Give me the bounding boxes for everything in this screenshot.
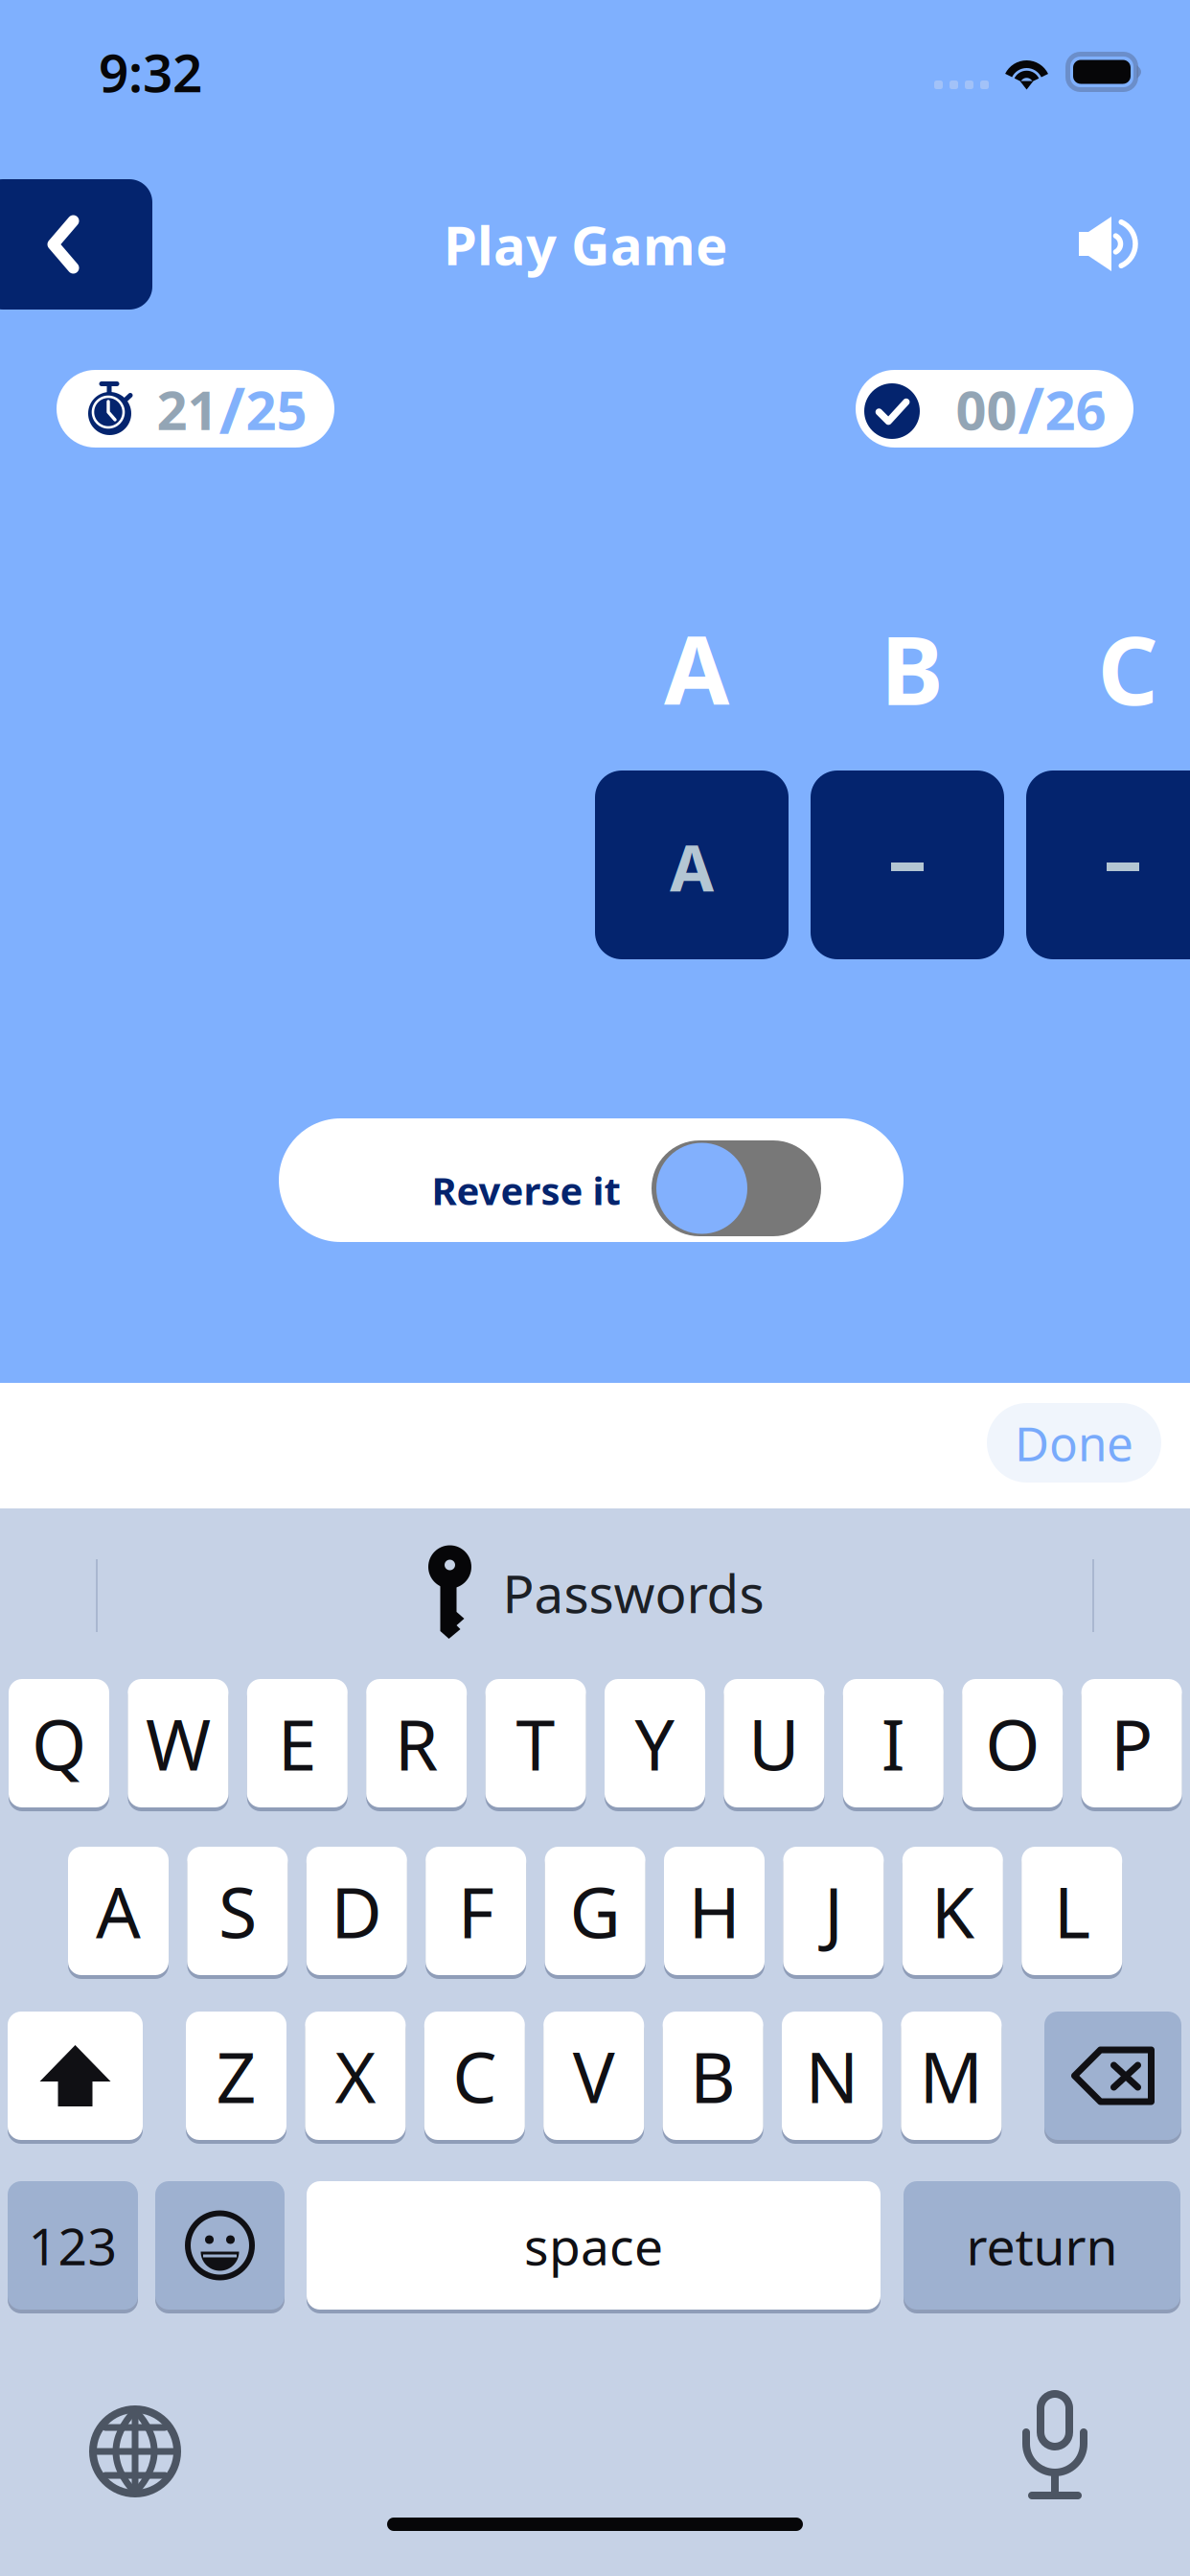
button[interactable]: Q bbox=[9, 1679, 109, 1811]
button[interactable]: I bbox=[843, 1679, 944, 1811]
button[interactable]: S bbox=[187, 1847, 288, 1979]
staticText: W bbox=[146, 1697, 211, 1790]
button[interactable] bbox=[811, 770, 1004, 959]
button[interactable]: space bbox=[307, 2181, 881, 2313]
staticText: A bbox=[96, 1864, 141, 1958]
staticText: N bbox=[805, 2029, 859, 2122]
staticText: S bbox=[218, 1864, 257, 1958]
staticText: / bbox=[219, 367, 246, 452]
button[interactable]: 00 bbox=[856, 370, 1133, 448]
button[interactable] bbox=[1026, 770, 1190, 959]
staticText: X bbox=[335, 2029, 376, 2122]
button[interactable]: A bbox=[595, 770, 789, 959]
button[interactable]: Reverse it bbox=[279, 1118, 904, 1242]
button[interactable]: G bbox=[545, 1847, 645, 1979]
button[interactable]: M bbox=[901, 2012, 1002, 2144]
staticText: 123 bbox=[28, 2211, 117, 2279]
button[interactable]: Back bbox=[0, 179, 152, 310]
staticText: L bbox=[1054, 1864, 1090, 1958]
staticText: B bbox=[881, 606, 944, 731]
staticText: 9:32 bbox=[99, 37, 202, 107]
staticText: F bbox=[458, 1864, 494, 1958]
button[interactable]: K bbox=[902, 1847, 1003, 1979]
button[interactable]: Z bbox=[186, 2012, 286, 2144]
button[interactable]: Done bbox=[987, 1403, 1161, 1483]
button[interactable]: return bbox=[904, 2181, 1180, 2313]
staticText: M bbox=[919, 2029, 983, 2122]
button[interactable]: N bbox=[782, 2012, 882, 2144]
button[interactable]: E bbox=[247, 1679, 348, 1811]
staticText: C bbox=[453, 2029, 497, 2122]
staticText: E bbox=[278, 1697, 317, 1790]
staticText: Reverse it bbox=[432, 1165, 620, 1216]
button[interactable]: Passwords bbox=[423, 1547, 767, 1639]
button[interactable]: U bbox=[724, 1679, 824, 1811]
button[interactable]: Sound bbox=[1079, 217, 1142, 271]
button[interactable]: F bbox=[426, 1847, 526, 1979]
staticText: J bbox=[824, 1864, 843, 1958]
staticText: 00 bbox=[956, 374, 1017, 445]
staticText: return bbox=[966, 2211, 1118, 2279]
staticText: Q bbox=[32, 1697, 86, 1790]
button[interactable]: 21 bbox=[57, 370, 334, 448]
staticText: V bbox=[573, 2029, 615, 2122]
button[interactable]: Shift bbox=[8, 2012, 143, 2144]
staticText: I bbox=[881, 1697, 905, 1790]
button[interactable]: L bbox=[1022, 1847, 1122, 1979]
button[interactable]: R bbox=[366, 1679, 467, 1811]
staticText: K bbox=[931, 1864, 974, 1958]
staticText: 25 bbox=[246, 374, 307, 445]
button[interactable]: Delete bbox=[1044, 2012, 1181, 2144]
button[interactable]: Dictate bbox=[1011, 2390, 1099, 2517]
button[interactable]: W bbox=[128, 1679, 228, 1811]
staticText: Passwords bbox=[503, 1558, 764, 1628]
button[interactable]: X bbox=[305, 2012, 406, 2144]
button[interactable]: V bbox=[543, 2012, 644, 2144]
button[interactable]: O bbox=[962, 1679, 1063, 1811]
button[interactable]: Next keyboard bbox=[91, 2407, 179, 2495]
staticText: 21 bbox=[157, 374, 218, 445]
staticText: 26 bbox=[1045, 374, 1106, 445]
button[interactable]: D bbox=[306, 1847, 407, 1979]
button[interactable]: B bbox=[663, 2012, 763, 2144]
staticText: D bbox=[331, 1864, 383, 1958]
staticText: G bbox=[570, 1864, 620, 1958]
button[interactable]: Emoji bbox=[155, 2181, 285, 2313]
staticText: Play Game bbox=[444, 209, 727, 280]
button[interactable]: A bbox=[68, 1847, 169, 1979]
button[interactable]: T bbox=[485, 1679, 586, 1811]
staticText: A bbox=[664, 606, 729, 731]
button[interactable]: C bbox=[424, 2012, 525, 2144]
button[interactable]: Y bbox=[605, 1679, 705, 1811]
staticText: C bbox=[1098, 606, 1158, 731]
staticText: H bbox=[688, 1864, 740, 1958]
staticText: Z bbox=[216, 2029, 256, 2122]
staticText: U bbox=[748, 1697, 800, 1790]
staticText: space bbox=[524, 2211, 663, 2279]
staticText: / bbox=[1018, 367, 1045, 452]
button[interactable]: H bbox=[664, 1847, 765, 1979]
staticText: A bbox=[670, 824, 714, 909]
staticText: R bbox=[394, 1697, 439, 1790]
button[interactable]: J bbox=[783, 1847, 884, 1979]
staticText: P bbox=[1111, 1697, 1153, 1790]
staticText: Done bbox=[1015, 1411, 1133, 1474]
button[interactable]: P bbox=[1081, 1679, 1182, 1811]
staticText: Y bbox=[635, 1697, 675, 1790]
staticText: T bbox=[516, 1697, 555, 1790]
staticText: O bbox=[985, 1697, 1040, 1790]
button[interactable]: 123 bbox=[8, 2181, 138, 2313]
staticText: B bbox=[690, 2029, 736, 2122]
